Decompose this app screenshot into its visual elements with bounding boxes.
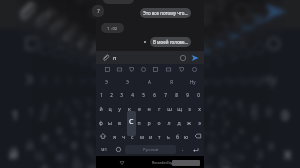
button[interactable]: В моей голове... — [150, 11, 213, 27]
button[interactable]: Backspace — [191, 129, 204, 143]
button[interactable]: к — [94, 121, 116, 151]
button[interactable]: Русский — [125, 145, 176, 154]
button[interactable]: 7 — [171, 95, 195, 121]
button[interactable]: Attach — [27, 6, 54, 33]
button[interactable]: Send — [234, 15, 260, 41]
button[interactable]: 8 — [177, 90, 191, 105]
button[interactable]: 4 — [114, 92, 131, 110]
button[interactable]: 6 — [149, 89, 160, 101]
button[interactable]: г — [155, 106, 168, 123]
button[interactable]: у — [62, 126, 86, 160]
button[interactable]: ж — [193, 123, 206, 141]
button[interactable]: 6 — [148, 92, 165, 110]
button[interactable]: ц — [93, 106, 104, 123]
button[interactable]: А — [124, 65, 171, 95]
button[interactable]: Э — [69, 62, 121, 96]
button[interactable]: Attach — [57, 25, 78, 45]
button[interactable]: Voice — [183, 28, 219, 59]
button[interactable]: Shift — [50, 167, 76, 168]
button[interactable]: Emoji — [112, 143, 124, 156]
button[interactable]: Clipboard — [137, 64, 149, 75]
button[interactable]: в — [94, 132, 110, 154]
button[interactable]: к — [110, 110, 125, 132]
button[interactable]: я — [88, 154, 102, 168]
button[interactable]: о — [156, 132, 172, 154]
button[interactable]: г — [157, 115, 176, 141]
button[interactable]: р — [139, 141, 157, 167]
button[interactable]: ы — [67, 141, 83, 167]
button[interactable]: ц — [105, 101, 114, 115]
button[interactable]: Я — [168, 67, 209, 93]
button[interactable]: ф — [96, 115, 105, 129]
button[interactable]: Sticker — [118, 59, 133, 73]
button[interactable]: More — [243, 35, 275, 62]
button[interactable]: Attach — [100, 52, 111, 63]
button[interactable]: ш — [189, 131, 217, 168]
button[interactable]: е — [116, 121, 137, 151]
button[interactable]: п — [116, 151, 137, 168]
button[interactable]: Translate — [147, 28, 183, 59]
button[interactable]: з — [244, 131, 272, 168]
button[interactable]: а — [124, 115, 134, 129]
button[interactable]: 5 — [121, 96, 148, 126]
button[interactable]: о — [159, 151, 180, 168]
button[interactable]: !#1 — [81, 159, 102, 168]
button[interactable]: ы — [80, 132, 94, 154]
button[interactable]: 3 — [116, 89, 127, 101]
button[interactable]: Э — [96, 75, 117, 89]
button[interactable]: Shift — [81, 141, 99, 159]
button[interactable]: ж — [203, 132, 218, 154]
button[interactable]: щ — [187, 110, 203, 132]
button[interactable]: Ну — [182, 75, 204, 89]
button[interactable]: ы — [93, 123, 104, 141]
button[interactable]: Theme — [30, 35, 59, 62]
button[interactable]: Theme — [88, 59, 103, 73]
button[interactable]: Sticker — [80, 28, 114, 59]
button[interactable]: 2 — [94, 90, 107, 105]
button[interactable]: с — [128, 129, 137, 143]
button[interactable]: GIF — [70, 41, 96, 65]
button[interactable]: ф — [50, 141, 67, 167]
button[interactable]: Settings — [182, 59, 198, 73]
button[interactable]: х — [272, 131, 300, 168]
button[interactable]: в — [83, 141, 102, 167]
button[interactable]: Я — [163, 73, 191, 90]
button[interactable]: Я — [165, 70, 200, 92]
button[interactable]: Emoji — [208, 15, 232, 39]
button[interactable]: Voice — [179, 35, 211, 62]
button[interactable]: р — [144, 115, 154, 129]
button[interactable]: г — [156, 110, 172, 132]
button[interactable]: у — [73, 121, 94, 151]
button[interactable]: 2 — [28, 98, 55, 131]
button[interactable]: е — [105, 131, 133, 168]
button[interactable]: ц — [67, 115, 83, 141]
button[interactable]: с — [116, 154, 130, 168]
button[interactable]: г — [159, 121, 180, 151]
button[interactable]: х — [194, 101, 204, 115]
button[interactable]: Shift — [66, 154, 88, 168]
button[interactable]: Attach — [11, 0, 42, 26]
button[interactable]: м — [133, 141, 145, 159]
button[interactable]: 1 :02 — [74, 0, 110, 5]
button[interactable]: Settings — [204, 41, 232, 65]
button[interactable]: с — [122, 141, 133, 159]
button[interactable]: 3 — [97, 92, 114, 110]
button[interactable]: б — [179, 141, 191, 159]
button[interactable]: й — [18, 126, 40, 160]
button[interactable]: Enter — [188, 143, 204, 156]
button[interactable]: Send — [189, 52, 201, 64]
button[interactable]: Emoji — [200, 25, 220, 45]
button[interactable]: 9 — [200, 92, 217, 110]
button[interactable]: More — [198, 59, 215, 73]
